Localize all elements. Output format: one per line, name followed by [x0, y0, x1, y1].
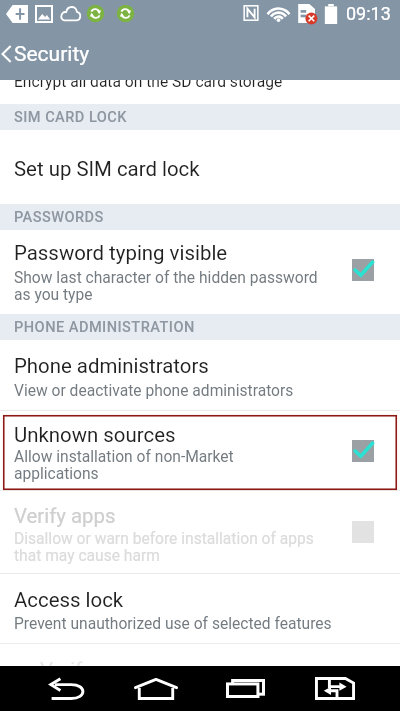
staticText: PASSWORDS [14, 208, 104, 225]
button[interactable]: Access lock [0, 574, 400, 642]
staticText: View or deactivate phone administrators [14, 382, 294, 400]
staticText: Access lock [14, 588, 124, 612]
staticText: Security [14, 42, 90, 67]
staticText: Allow installation of non-Market applica… [14, 448, 234, 483]
staticText: Disallow or warn before installation of … [14, 530, 314, 565]
staticText: PHONE ADMINISTRATION [14, 318, 195, 335]
staticText: Encrypt all data on the SD card storage [14, 73, 283, 91]
button[interactable]: Dual window [290, 666, 380, 711]
button[interactable]: Verify apps [0, 491, 400, 573]
staticText: SIM CARD LOCK [14, 108, 127, 125]
button[interactable]: Set up SIM card lock [0, 130, 400, 204]
button[interactable]: Back [21, 666, 111, 711]
staticText: Verify apps [40, 658, 142, 666]
staticText: Prevent unauthorized use of selected fea… [14, 615, 332, 633]
staticText: Verify apps [14, 504, 116, 528]
staticText: Unknown sources [14, 423, 176, 447]
button[interactable]: Checked [352, 259, 374, 281]
button[interactable]: Unknown sources [0, 411, 400, 490]
button[interactable]: Encrypt SD card [0, 60, 400, 104]
staticText: Password typing visible [14, 241, 228, 265]
staticText: Phone administrators [14, 354, 209, 378]
staticText: Show last character of the hidden passwo… [14, 269, 318, 304]
button[interactable]: Navigate up [0, 28, 400, 80]
button[interactable]: Checked [352, 440, 374, 462]
button[interactable]: Recent apps [200, 666, 290, 711]
button[interactable]: More settings [0, 643, 400, 666]
staticText: 09:13 [346, 3, 391, 24]
staticText: Set up SIM card lock [14, 157, 200, 181]
button[interactable]: Phone administrators [0, 340, 400, 410]
button[interactable]: Password typing visible [0, 230, 400, 314]
button[interactable]: Home [111, 666, 201, 711]
